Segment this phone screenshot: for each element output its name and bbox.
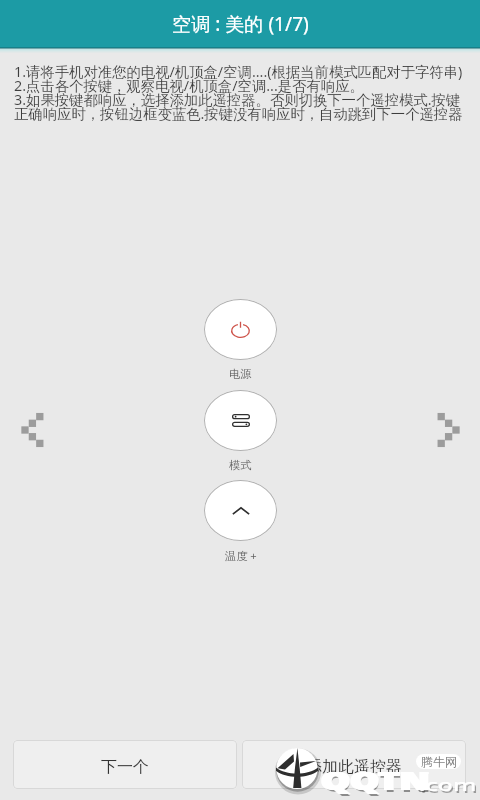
button[interactable]: Temperature up — [204, 480, 277, 541]
staticText: QQTN — [321, 763, 430, 797]
staticText: 下一个 — [101, 757, 149, 777]
button[interactable]: Mode — [204, 390, 277, 451]
button[interactable]: Power — [204, 299, 277, 360]
staticText: 腾牛网 — [421, 754, 457, 769]
staticText: 温度 + — [225, 548, 257, 563]
staticText: QQTN — [322, 763, 432, 797]
staticText: 空调 : 美的 (1/7) — [172, 11, 309, 37]
button[interactable]: Previous remote — [1, 406, 49, 454]
staticText: .com — [420, 775, 479, 798]
staticText: 模式 — [229, 458, 252, 472]
staticText: 电源 — [229, 367, 252, 381]
staticText: 1.请将手机对准您的电视/机顶盒/空调....(根据当前模式匹配对于字符串) 2… — [14, 62, 463, 124]
staticText: QQTN — [319, 763, 429, 797]
button[interactable]: 下一个 — [13, 740, 237, 789]
staticText: .com — [419, 773, 477, 796]
button[interactable]: Next remote — [432, 406, 480, 454]
staticText: QQTN — [322, 765, 432, 799]
button[interactable]: 添加此遥控器 — [242, 740, 466, 789]
staticText: 添加此遥控器 — [306, 757, 402, 777]
